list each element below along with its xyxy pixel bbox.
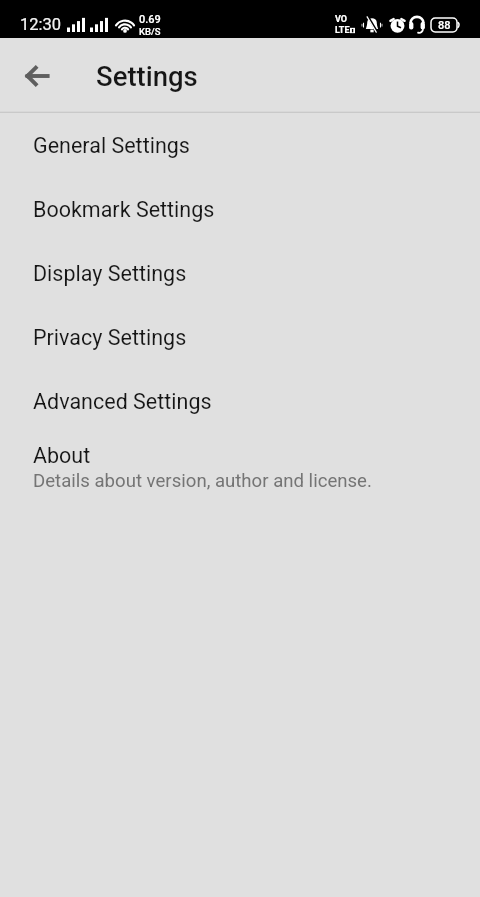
staticText: 0.69	[139, 13, 161, 26]
staticText: About	[33, 443, 91, 468]
staticText: Details about version, author and licens…	[33, 470, 372, 492]
staticText: Advanced Settings	[33, 389, 212, 414]
staticText: 88	[438, 19, 451, 32]
staticText: Privacy Settings	[33, 325, 187, 350]
staticText: Settings	[96, 60, 198, 92]
button[interactable]: Display Settings	[0, 241, 480, 305]
button[interactable]: Advanced Settings	[0, 369, 480, 433]
button[interactable]: Bookmark Settings	[0, 177, 480, 241]
staticText: Display Settings	[33, 261, 187, 286]
staticText: General Settings	[33, 133, 190, 158]
staticText: KB/S	[139, 26, 161, 37]
staticText: 12:30	[20, 15, 62, 34]
button[interactable]: General Settings	[0, 113, 480, 177]
button[interactable]: About	[0, 433, 480, 513]
staticText: LTE	[335, 25, 350, 36]
button[interactable]: Privacy Settings	[0, 305, 480, 369]
staticText: Bookmark Settings	[33, 197, 215, 222]
staticText: VO	[335, 14, 348, 25]
button[interactable]: Navigate up	[12, 52, 60, 100]
